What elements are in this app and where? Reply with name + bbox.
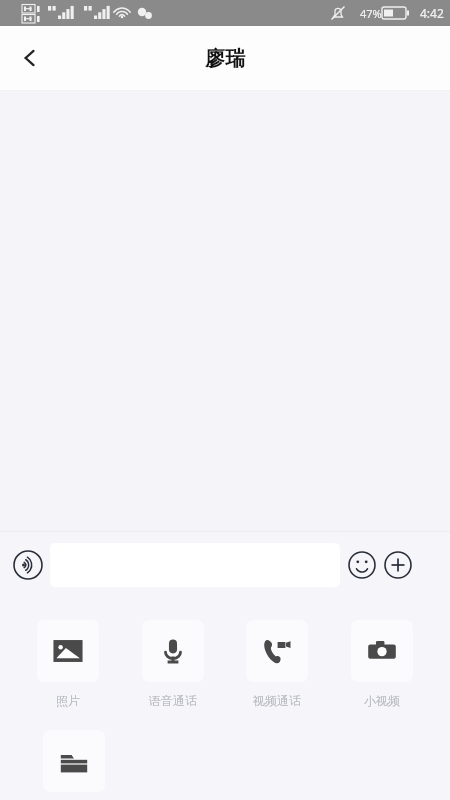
staticText: 小视频	[364, 693, 400, 708]
button[interactable]: More	[380, 547, 416, 583]
button[interactable]: 视频通话	[241, 620, 313, 708]
staticText: 语音通话	[149, 693, 197, 708]
button[interactable]: Back	[8, 36, 52, 80]
staticText: 视频通话	[253, 693, 301, 708]
button[interactable]: 小视频	[346, 620, 418, 708]
staticText: 4:42	[420, 5, 444, 21]
staticText: 廖瑞	[205, 46, 245, 71]
button[interactable]: 语音通话	[137, 620, 209, 708]
button[interactable]: Voice input	[8, 545, 48, 585]
staticText: 照片	[56, 693, 80, 708]
button[interactable]: Emoji	[344, 547, 380, 583]
staticText: 47%	[360, 6, 382, 21]
button[interactable]: 文件	[38, 730, 110, 800]
button[interactable]: 照片	[32, 620, 104, 708]
